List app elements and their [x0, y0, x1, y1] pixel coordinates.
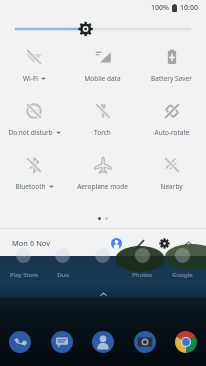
button[interactable]: Chrome — [172, 328, 200, 356]
staticText: 100% — [151, 3, 169, 13]
staticText: Bluetooth — [15, 182, 46, 191]
button[interactable]: Do not disturb — [0, 101, 68, 138]
button[interactable]: Camera — [131, 328, 159, 356]
button[interactable]: Wi-Fi — [0, 47, 68, 84]
staticText: Aeroplane mode — [77, 182, 128, 191]
staticText: Wi-Fi — [23, 74, 38, 83]
button[interactable]: Phone — [6, 328, 34, 356]
button[interactable]: Messages — [48, 328, 76, 356]
button[interactable]: Mon 6 Nov — [12, 238, 51, 248]
button[interactable]: Collapse — [178, 233, 198, 253]
button[interactable]: Photos — [122, 256, 162, 279]
button[interactable]: Brightness — [16, 21, 190, 37]
button[interactable]: Duo — [43, 256, 82, 279]
staticText: Torch — [94, 128, 111, 137]
button[interactable]: Bluetooth — [0, 155, 68, 192]
button[interactable]: Mobile data — [68, 47, 137, 84]
button[interactable]: Edit — [130, 233, 150, 253]
staticText: Google — [172, 271, 193, 279]
button[interactable]: Settings — [154, 233, 174, 253]
button[interactable]: Battery Saver — [137, 47, 206, 84]
button[interactable]: Auto-rotate — [137, 101, 206, 138]
button[interactable]: Google — [162, 256, 202, 279]
button[interactable]: User account — [106, 233, 126, 253]
staticText: Play Store — [10, 271, 38, 279]
button[interactable]: Nearby — [137, 155, 206, 192]
button[interactable]: Aeroplane mode — [68, 155, 137, 192]
button[interactable]: Open app drawer — [0, 288, 206, 300]
staticText: Battery Saver — [151, 74, 192, 83]
staticText: Do not disturb — [8, 128, 53, 137]
button[interactable]: Play Store — [4, 256, 43, 279]
button[interactable]: Contacts — [89, 328, 117, 356]
staticText: Mobile data — [84, 74, 121, 83]
staticText: 10:00 — [180, 3, 198, 13]
button[interactable]: Torch — [68, 101, 137, 138]
button[interactable] — [82, 256, 122, 271]
staticText: Nearby — [160, 182, 183, 191]
staticText: Photos — [132, 271, 152, 279]
staticText: Duo — [57, 271, 69, 279]
staticText: Auto-rotate — [154, 128, 190, 137]
